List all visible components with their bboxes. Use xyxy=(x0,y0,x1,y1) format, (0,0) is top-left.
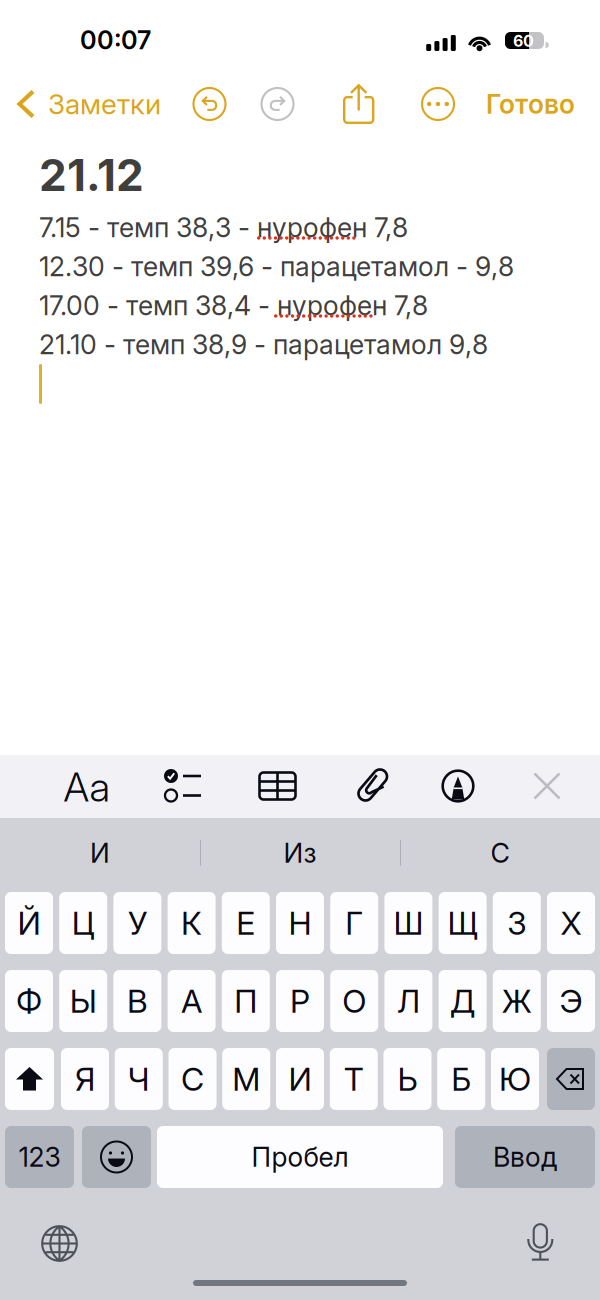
staticText: Ч xyxy=(128,1060,150,1098)
staticText: Д xyxy=(450,982,475,1020)
staticText: Ь xyxy=(397,1060,417,1098)
button[interactable]: К xyxy=(168,892,216,954)
staticText: О xyxy=(342,982,366,1020)
button[interactable]: И xyxy=(0,818,200,888)
button[interactable]: П xyxy=(222,970,270,1032)
button[interactable]: Б xyxy=(437,1048,485,1110)
button[interactable]: А xyxy=(168,970,216,1032)
staticText: Ф xyxy=(16,982,42,1020)
button[interactable]: Э xyxy=(547,970,595,1032)
staticText: Х xyxy=(560,904,581,942)
staticText: А xyxy=(181,982,202,1020)
button[interactable]: Attach xyxy=(355,767,389,805)
button[interactable]: С xyxy=(168,1048,216,1110)
staticText: 21.10 - темп 38,9 - парацетамол 9,8 xyxy=(39,328,488,361)
button[interactable]: Ы xyxy=(59,970,107,1032)
button[interactable]: Я xyxy=(61,1048,109,1110)
staticText: Ввод xyxy=(493,1141,557,1173)
staticText: Б xyxy=(451,1060,471,1098)
button[interactable]: З xyxy=(493,892,541,954)
button[interactable]: Готово xyxy=(0,82,100,126)
button[interactable]: Ввод xyxy=(455,1126,595,1188)
button[interactable]: Share xyxy=(342,83,374,123)
button[interactable]: У xyxy=(113,892,161,954)
staticText: 123 xyxy=(18,1141,60,1173)
button[interactable]: Щ xyxy=(439,892,487,954)
staticText: Р xyxy=(290,982,310,1020)
button[interactable]: Ф xyxy=(5,970,53,1032)
staticText: И xyxy=(288,1060,311,1098)
staticText: Щ xyxy=(448,904,478,942)
staticText: 60 xyxy=(513,31,534,51)
staticText: 7.15 - темп 38,3 - нурофен 7,8 xyxy=(39,211,408,244)
button[interactable]: Ц xyxy=(59,892,107,954)
staticText: Ю xyxy=(499,1060,531,1098)
button[interactable]: Ж xyxy=(493,970,541,1032)
button[interactable]: В xyxy=(113,970,161,1032)
button[interactable]: Close xyxy=(533,772,561,800)
button[interactable]: Ю xyxy=(491,1048,539,1110)
staticText: Ж xyxy=(502,982,532,1020)
staticText: Пробел xyxy=(251,1141,348,1173)
staticText: Е xyxy=(236,904,255,942)
staticText: Г xyxy=(345,904,363,942)
staticText: Л xyxy=(397,982,420,1020)
button[interactable]: Л xyxy=(384,970,432,1032)
button[interactable]: Пробел xyxy=(157,1126,443,1188)
button[interactable]: И xyxy=(276,1048,324,1110)
staticText: 12.30 - темп 39,6 - парацетамол - 9,8 xyxy=(39,250,514,283)
button[interactable]: Markup xyxy=(441,769,475,803)
staticText: Н xyxy=(288,904,311,942)
staticText: Ы xyxy=(70,982,97,1020)
staticText: Aa xyxy=(63,763,110,811)
button[interactable]: О xyxy=(330,970,378,1032)
staticText: Й xyxy=(17,904,40,942)
button[interactable]: Dictation xyxy=(527,1223,554,1262)
button[interactable]: Redo xyxy=(259,86,295,122)
button[interactable]: Switch keyboard xyxy=(41,1225,78,1262)
staticText: Ц xyxy=(72,904,95,942)
button[interactable]: Заметки xyxy=(0,82,170,126)
staticText: С xyxy=(181,1060,204,1098)
staticText: К xyxy=(181,904,202,942)
button[interactable]: Е xyxy=(222,892,270,954)
staticText: И xyxy=(90,837,110,869)
staticText: М xyxy=(232,1060,260,1098)
staticText: В xyxy=(127,982,148,1020)
button[interactable]: 123 xyxy=(5,1126,74,1188)
button[interactable]: Г xyxy=(330,892,378,954)
button[interactable]: Table xyxy=(258,771,297,801)
button[interactable]: Р xyxy=(276,970,324,1032)
button[interactable]: Backspace xyxy=(547,1048,595,1110)
button[interactable]: Shift xyxy=(5,1048,54,1110)
button[interactable]: Ш xyxy=(384,892,432,954)
button[interactable]: Checklist xyxy=(164,769,202,803)
button[interactable]: Т xyxy=(330,1048,378,1110)
staticText: Заметки xyxy=(48,87,161,121)
staticText: Э xyxy=(559,982,582,1020)
button[interactable]: Й xyxy=(5,892,53,954)
staticText: З xyxy=(507,904,526,942)
staticText: У xyxy=(128,904,147,942)
button[interactable]: More xyxy=(420,86,456,122)
button[interactable]: С xyxy=(400,818,600,888)
staticText: С xyxy=(490,837,509,869)
button[interactable]: Н xyxy=(276,892,324,954)
staticText: Ш xyxy=(393,904,423,942)
staticText: Из xyxy=(283,837,316,869)
button[interactable]: Ь xyxy=(383,1048,431,1110)
button[interactable]: Из xyxy=(200,818,400,888)
staticText: 21.12 xyxy=(39,148,144,202)
staticText: 17.00 - темп 38,4 - нурофен 7,8 xyxy=(39,289,428,322)
button[interactable]: М xyxy=(222,1048,270,1110)
button[interactable]: Ч xyxy=(115,1048,163,1110)
staticText: П xyxy=(234,982,257,1020)
button[interactable]: Х xyxy=(547,892,595,954)
button[interactable]: Undo xyxy=(191,86,227,122)
button[interactable]: Д xyxy=(439,970,487,1032)
staticText: Т xyxy=(344,1060,364,1098)
staticText: Готово xyxy=(486,88,575,120)
staticText: Я xyxy=(75,1060,95,1098)
button[interactable]: Emoji xyxy=(82,1126,151,1188)
